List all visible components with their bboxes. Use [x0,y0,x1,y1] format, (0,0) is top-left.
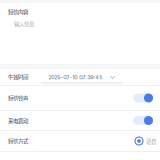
staticText: 短信方式 [8,137,28,145]
staticText: 生效时间 [8,73,28,81]
button[interactable]: 短信铃声 [0,86,160,110]
button[interactable]: 来电震动 [0,111,160,130]
staticText: 2025-07-10 07:39:45 [48,74,102,80]
staticText: 短信内容 [8,8,28,16]
staticText: 语音 [146,137,156,145]
button[interactable]: 生效时间 [0,69,160,85]
staticText: 来电震动 [8,116,28,124]
button[interactable]: 短信方式 [0,131,160,151]
staticText: 输入信息 [14,20,34,28]
staticText: 短信铃声 [8,94,28,102]
